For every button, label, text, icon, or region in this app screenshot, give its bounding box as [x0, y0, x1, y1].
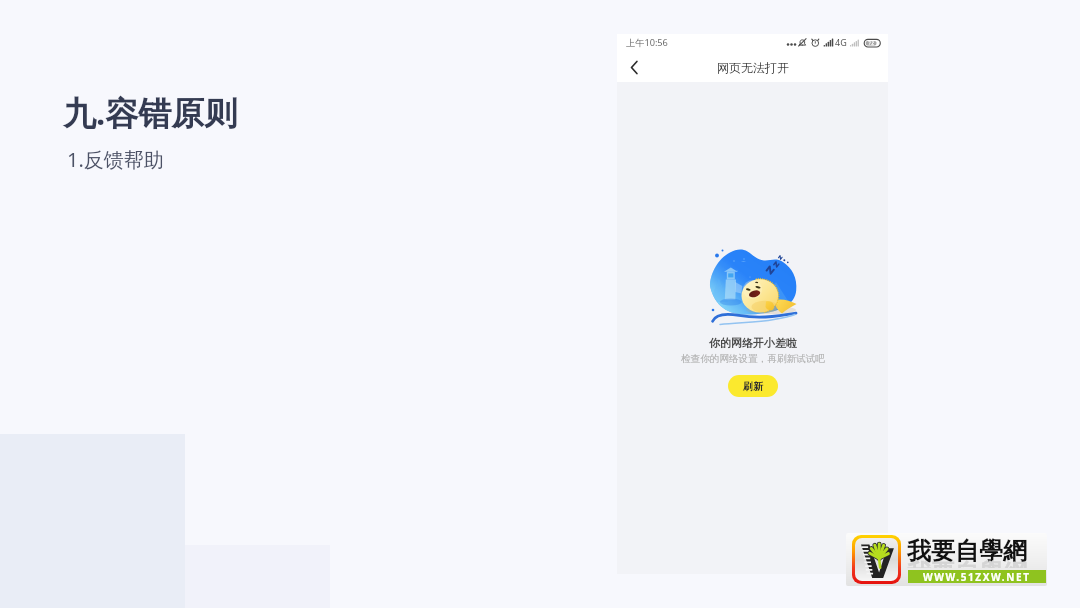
staticText: 你的网络开小差啦	[709, 336, 797, 350]
staticText: 九.容错原则	[63, 90, 238, 135]
staticText: 网页无法打开	[717, 60, 789, 75]
staticText: WWW.51ZXW.NET	[923, 570, 1031, 583]
staticText: 刷新	[743, 380, 763, 393]
staticText: 1.反馈帮助	[67, 146, 164, 173]
staticText: 检查你的网络设置，再刷新试试吧	[681, 353, 825, 365]
button[interactable]: Back	[623, 56, 645, 78]
button[interactable]: 刷新	[728, 375, 778, 397]
staticText: 我要自學網	[907, 536, 1027, 566]
staticText: 4G	[835, 36, 847, 48]
staticText: 上午10:56	[626, 36, 668, 49]
staticText: 我要自學網	[907, 560, 1027, 568]
